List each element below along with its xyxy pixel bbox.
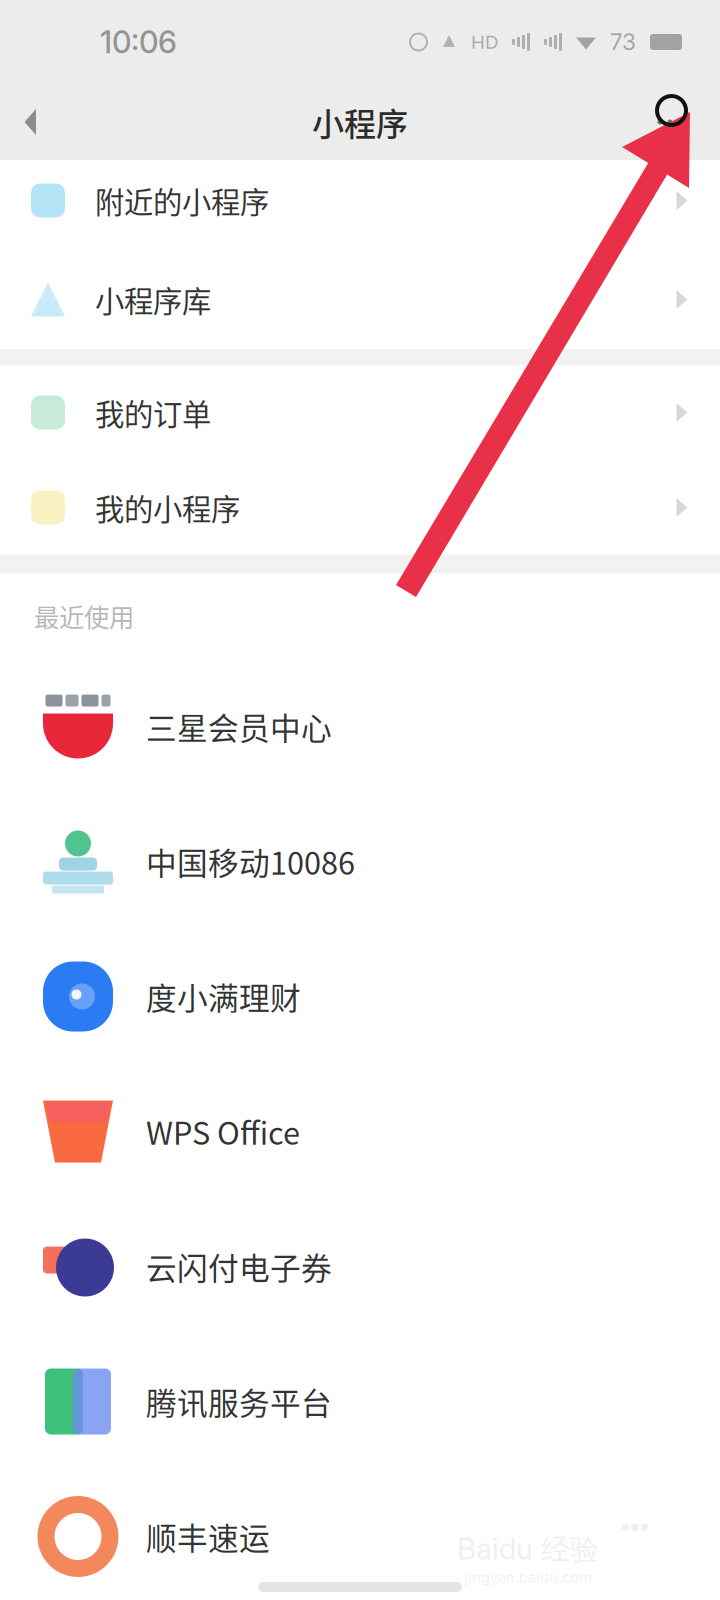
- staticText: 我的订单: [95, 391, 211, 434]
- staticText: 中国移动10086: [146, 839, 355, 884]
- button[interactable]: 附近的小程序: [0, 151, 720, 250]
- staticText: 顺丰速运: [146, 1514, 270, 1559]
- button[interactable]: More: [638, 90, 702, 154]
- staticText: Baidu 经验: [457, 1531, 599, 1568]
- staticText: 三星会员中心: [146, 704, 332, 749]
- staticText: 我的小程序: [95, 486, 240, 529]
- staticText: 最近使用: [34, 598, 134, 634]
- button[interactable]: 我的小程序: [0, 460, 720, 555]
- button[interactable]: WPS Office: [0, 1064, 720, 1199]
- button[interactable]: 腾讯服务平台: [0, 1334, 720, 1469]
- staticText: 附近的小程序: [95, 179, 269, 222]
- button[interactable]: 中国移动10086: [0, 794, 720, 929]
- button[interactable]: 云闪付电子券: [0, 1199, 720, 1334]
- button[interactable]: 顺丰速运: [0, 1469, 720, 1600]
- staticText: 73: [610, 28, 636, 56]
- staticText: 度小满理财: [146, 974, 301, 1019]
- staticText: HD: [471, 31, 498, 53]
- button[interactable]: 我的订单: [0, 365, 720, 460]
- staticText: 10:06: [100, 23, 177, 60]
- button[interactable]: 小程序库: [0, 250, 720, 349]
- staticText: 云闪付电子券: [146, 1244, 332, 1289]
- staticText: WPS Office: [146, 1109, 300, 1154]
- button[interactable]: 三星会员中心: [0, 659, 720, 794]
- button[interactable]: Back: [0, 84, 62, 160]
- staticText: jingyan.baidu.com: [464, 1568, 592, 1586]
- staticText: 小程序库: [95, 278, 211, 321]
- staticText: 小程序: [312, 99, 408, 145]
- staticText: 腾讯服务平台: [146, 1379, 332, 1424]
- button[interactable]: 度小满理财: [0, 929, 720, 1064]
